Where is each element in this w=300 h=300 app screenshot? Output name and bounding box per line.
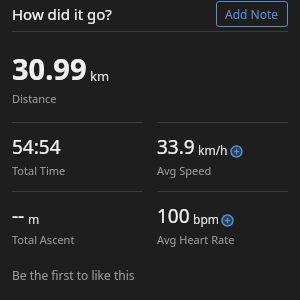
button[interactable]: -- [12, 203, 143, 247]
button[interactable]: 54:54 [12, 134, 143, 178]
staticText: Avg Speed [157, 163, 212, 178]
staticText: Add Note [225, 6, 279, 22]
staticText: Avg Heart Rate [157, 232, 235, 247]
staticText: km/h [198, 142, 228, 158]
staticText: 33.9 [157, 134, 195, 160]
staticText: Total Ascent [12, 232, 75, 247]
staticText: 30.99 [12, 49, 87, 88]
staticText: -- [12, 203, 25, 229]
staticText: km [90, 67, 110, 85]
button[interactable]: Add Note [216, 1, 288, 27]
staticText: 54:54 [12, 134, 61, 160]
staticText: 100 [157, 203, 190, 229]
staticText: Total Time [12, 163, 66, 178]
other: Info [231, 146, 242, 157]
other: Info [222, 215, 233, 226]
button[interactable]: 33.9 [157, 134, 288, 178]
staticText: Distance [12, 91, 57, 106]
button[interactable]: 30.99 [12, 49, 110, 106]
button[interactable]: How did it go? [12, 4, 112, 24]
button[interactable]: 100 [157, 203, 288, 247]
staticText: m [28, 211, 40, 227]
staticText: bpm [193, 211, 219, 227]
button[interactable]: Be the first to like this [12, 267, 135, 283]
